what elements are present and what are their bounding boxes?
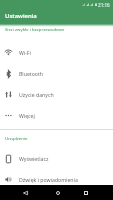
button[interactable]: Wi-Fi [0, 42, 113, 63]
button[interactable]: Użycie danych [0, 84, 113, 105]
staticText: Sieci zwykłe i bezprzewodowe [5, 27, 65, 33]
staticText: Bluetooth [19, 70, 44, 77]
staticText: 21:16 [98, 2, 110, 8]
staticText: Użycie danych [19, 91, 54, 98]
staticText: Więcej [19, 112, 35, 119]
button[interactable]: Wyświetlacz [0, 148, 113, 169]
staticText: Dźwięk i powiadomienia [19, 176, 78, 183]
staticText: Wi-Fi [19, 49, 31, 56]
button[interactable]: Bluetooth [0, 63, 113, 84]
staticText: Urządzenie [5, 136, 28, 142]
staticText: Wyświetlacz [19, 155, 49, 162]
button[interactable]: Więcej [0, 105, 113, 126]
button[interactable]: Dźwięk i powiadomienia [0, 169, 113, 190]
button[interactable]: Back [18, 185, 32, 200]
button[interactable]: Home [51, 185, 65, 200]
staticText: Ustawienia [5, 12, 37, 20]
button[interactable]: Recents [79, 185, 93, 200]
